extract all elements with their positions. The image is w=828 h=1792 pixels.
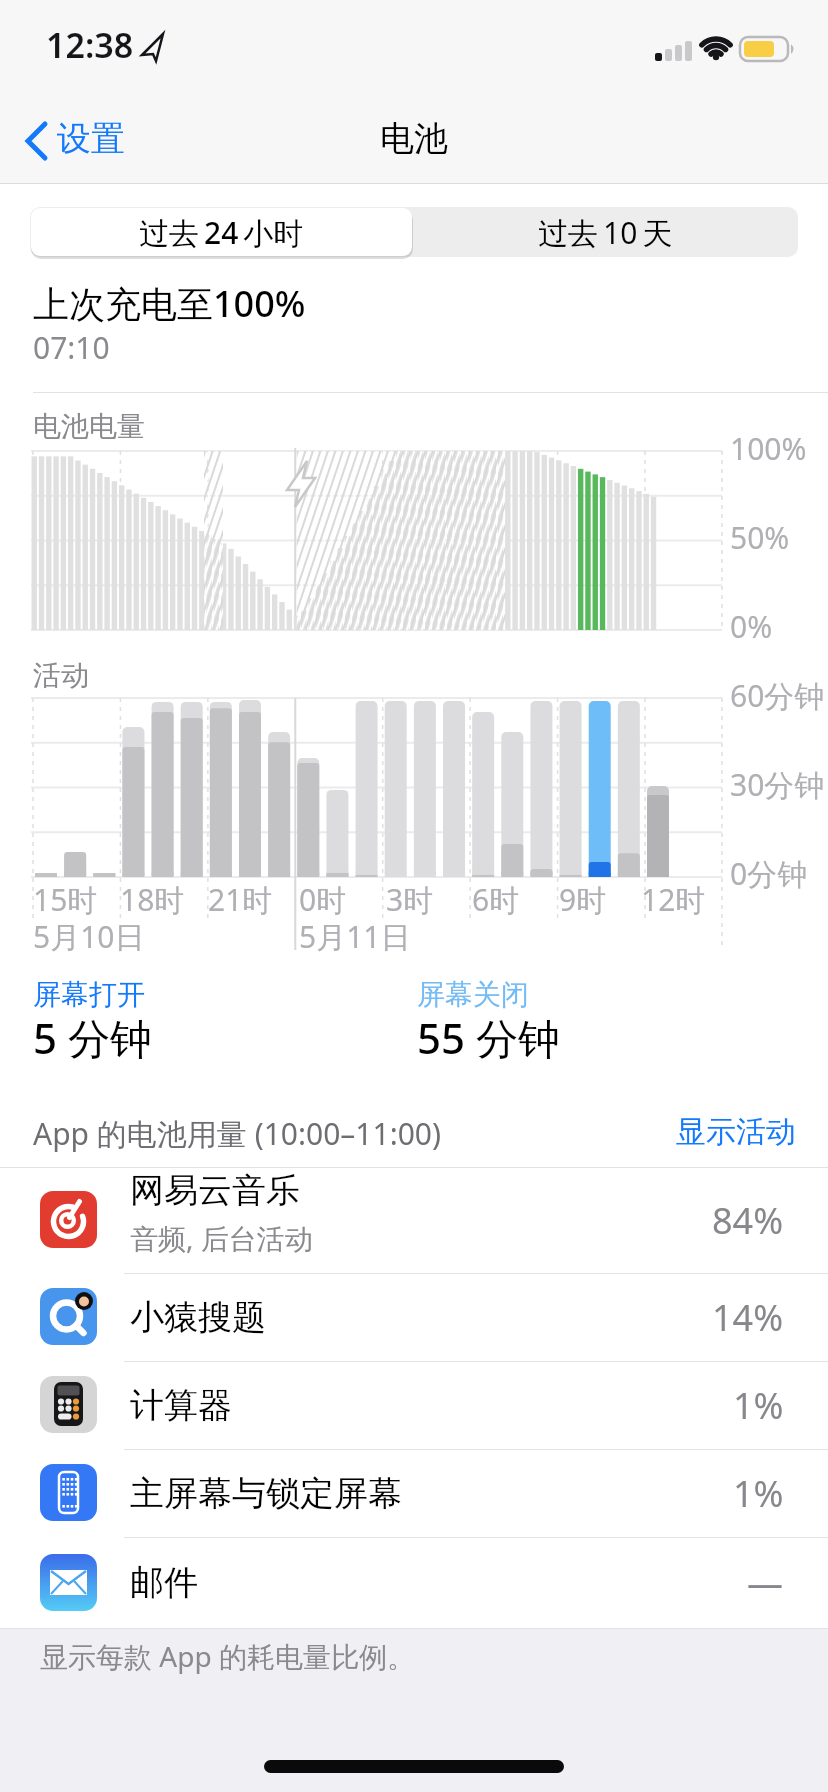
staticText: 活动 [33,658,89,693]
staticText: 过去 24 小时 [139,212,304,253]
staticText: 100% [730,428,807,469]
staticText: 1% [733,1381,784,1430]
button[interactable]: 计算器 [0,1361,828,1449]
staticText: 上次充电至100% [33,279,306,328]
staticText: 网易云音乐 [130,1169,300,1212]
staticText: 6时 [472,879,520,920]
staticText: 0分钟 [730,853,808,894]
staticText: 计算器 [130,1384,232,1427]
staticText: 18时 [120,879,185,920]
staticText: 12时 [641,879,706,920]
staticText: 84% [712,1196,784,1245]
staticText: App 的电池用量 (10:00–11:00) [33,1113,442,1154]
button[interactable]: 过去 10 天 [412,207,798,257]
staticText: 显示每款 App 的耗电量比例。 [40,1637,415,1675]
button[interactable]: 显示活动 [676,1122,796,1160]
staticText: 5月11日 [299,916,411,957]
staticText: 0% [730,606,773,647]
staticText: 12:38 [46,22,134,68]
staticText: 邮件 [130,1561,198,1604]
staticText: 音频, 后台活动 [130,1219,313,1257]
staticText: 55 分钟 [417,1009,560,1066]
staticText: 0时 [299,879,347,920]
staticText: 50% [730,517,790,558]
staticText: 5 分钟 [33,1009,152,1066]
staticText: 07:10 [33,327,110,368]
staticText: 9时 [559,879,607,920]
staticText: 电池 [380,117,448,160]
staticText: 电池电量 [33,409,145,444]
staticText: 小猿搜题 [130,1296,266,1339]
staticText: 屏幕关闭 [417,977,529,1012]
staticText: 14% [712,1293,784,1342]
button[interactable]: 设置 [0,0,68,43]
staticText: 21时 [208,879,273,920]
button[interactable]: 邮件 [0,1537,828,1628]
staticText: 30分钟 [730,764,825,805]
staticText: 5月10日 [33,916,145,957]
staticText: 15时 [33,879,98,920]
staticText: 过去 10 天 [538,212,673,253]
button[interactable]: 小猿搜题 [0,1273,828,1361]
staticText: 屏幕打开 [33,977,145,1012]
button[interactable]: 过去 24 小时 [31,208,412,256]
staticText: 主屏幕与锁定屏幕 [130,1472,402,1515]
staticText: 1% [733,1469,784,1518]
button[interactable]: 主屏幕与锁定屏幕 [0,1449,828,1537]
staticText: — [747,1558,784,1607]
staticText: 60分钟 [730,675,825,716]
button[interactable]: 网易云音乐 [0,1167,828,1273]
staticText: 3时 [386,879,434,920]
